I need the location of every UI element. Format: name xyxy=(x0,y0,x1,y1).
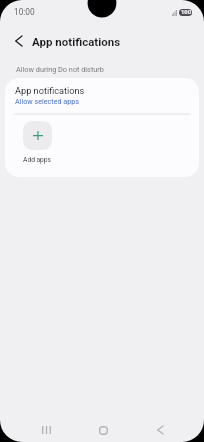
staticText: App notifications xyxy=(32,35,121,48)
staticText: 10:00 xyxy=(14,7,35,17)
button[interactable]: Recent apps xyxy=(28,412,64,442)
button[interactable]: Navigate up xyxy=(7,28,29,54)
staticText: Allow during Do not disturb xyxy=(16,65,104,74)
staticText: App notifications xyxy=(15,85,85,96)
button[interactable]: App notifications xyxy=(5,78,199,112)
staticText: 100 xyxy=(181,9,191,16)
button[interactable]: Back xyxy=(142,412,178,442)
staticText: Add apps xyxy=(23,156,51,164)
button[interactable]: Home xyxy=(85,412,121,442)
staticText: Allow selected apps xyxy=(15,97,79,105)
button[interactable]: Add apps xyxy=(7,121,67,164)
